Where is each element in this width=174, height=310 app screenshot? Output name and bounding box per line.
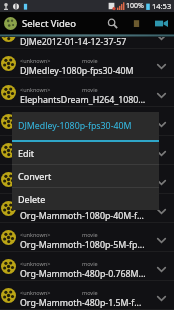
staticText: movie [82, 260, 98, 267]
staticText: movie [82, 231, 98, 238]
button[interactable]: Search [100, 13, 124, 34]
staticText: DJMedley-1080p-fps30-40M [20, 65, 134, 77]
staticText: movie [82, 28, 98, 35]
button[interactable]: <unknown> [0, 194, 174, 222]
staticText: <unknown> [20, 57, 51, 64]
staticText: <unknown> [20, 86, 51, 93]
staticText: <unknown> [20, 231, 51, 238]
button[interactable]: Browse folders [124, 13, 148, 34]
button[interactable]: <unknown> [0, 165, 174, 193]
staticText: Convert [18, 170, 52, 182]
button[interactable]: Edit [12, 142, 159, 164]
staticText: ElephantsDream_H264_1080p... [20, 94, 148, 106]
staticText: Org-Mammoth-1080p-5M-fp... [20, 239, 145, 251]
staticText: <unknown> [20, 173, 51, 180]
staticText: <unknown> [20, 144, 51, 151]
staticText: <unknown> [20, 28, 51, 35]
staticText: movie [82, 57, 98, 64]
button[interactable]: <unknown> [0, 107, 174, 135]
button[interactable]: Convert [12, 165, 159, 187]
staticText: Org-Mammoth-480p-0.768M... [20, 268, 146, 280]
button[interactable]: <unknown> [0, 49, 174, 77]
staticText: Select Video [22, 17, 76, 30]
staticText: <unknown> [20, 260, 51, 267]
staticText: Edit [18, 147, 35, 159]
staticText: <unknown> [20, 202, 51, 209]
staticText: Org-Mammoth-1080p-40M-f... [20, 210, 144, 222]
button[interactable]: Delete [12, 188, 159, 210]
staticText: Delete [18, 193, 46, 205]
staticText: movie [82, 86, 98, 93]
staticText: 14:53 [152, 1, 172, 11]
button[interactable]: <unknown> [0, 136, 174, 164]
staticText: Org-Mammoth-1080p-20M-f... [20, 123, 144, 135]
button[interactable]: App icon [4, 17, 17, 30]
staticText: Org-Mammoth-480p-1.5M-f... [20, 297, 142, 309]
staticText: DJMe2012-01-14-12-37-57 [20, 36, 127, 48]
button[interactable]: <unknown> [0, 281, 174, 309]
staticText: <unknown> [20, 289, 51, 296]
button[interactable]: <unknown> [0, 78, 174, 106]
staticText: DJMedley-1080p-fps30-40M [18, 120, 132, 132]
button[interactable]: Record video [148, 13, 174, 34]
button[interactable]: <unknown> [0, 252, 174, 280]
button[interactable]: <unknown> [0, 20, 174, 48]
staticText: Org-Mammoth-1080p-30M-f... [20, 152, 144, 164]
button[interactable]: <unknown> [0, 223, 174, 251]
staticText: 100% [126, 1, 144, 11]
staticText: movie [82, 289, 98, 296]
staticText: Org-Mammoth-1080p-20M-f... [20, 181, 144, 193]
